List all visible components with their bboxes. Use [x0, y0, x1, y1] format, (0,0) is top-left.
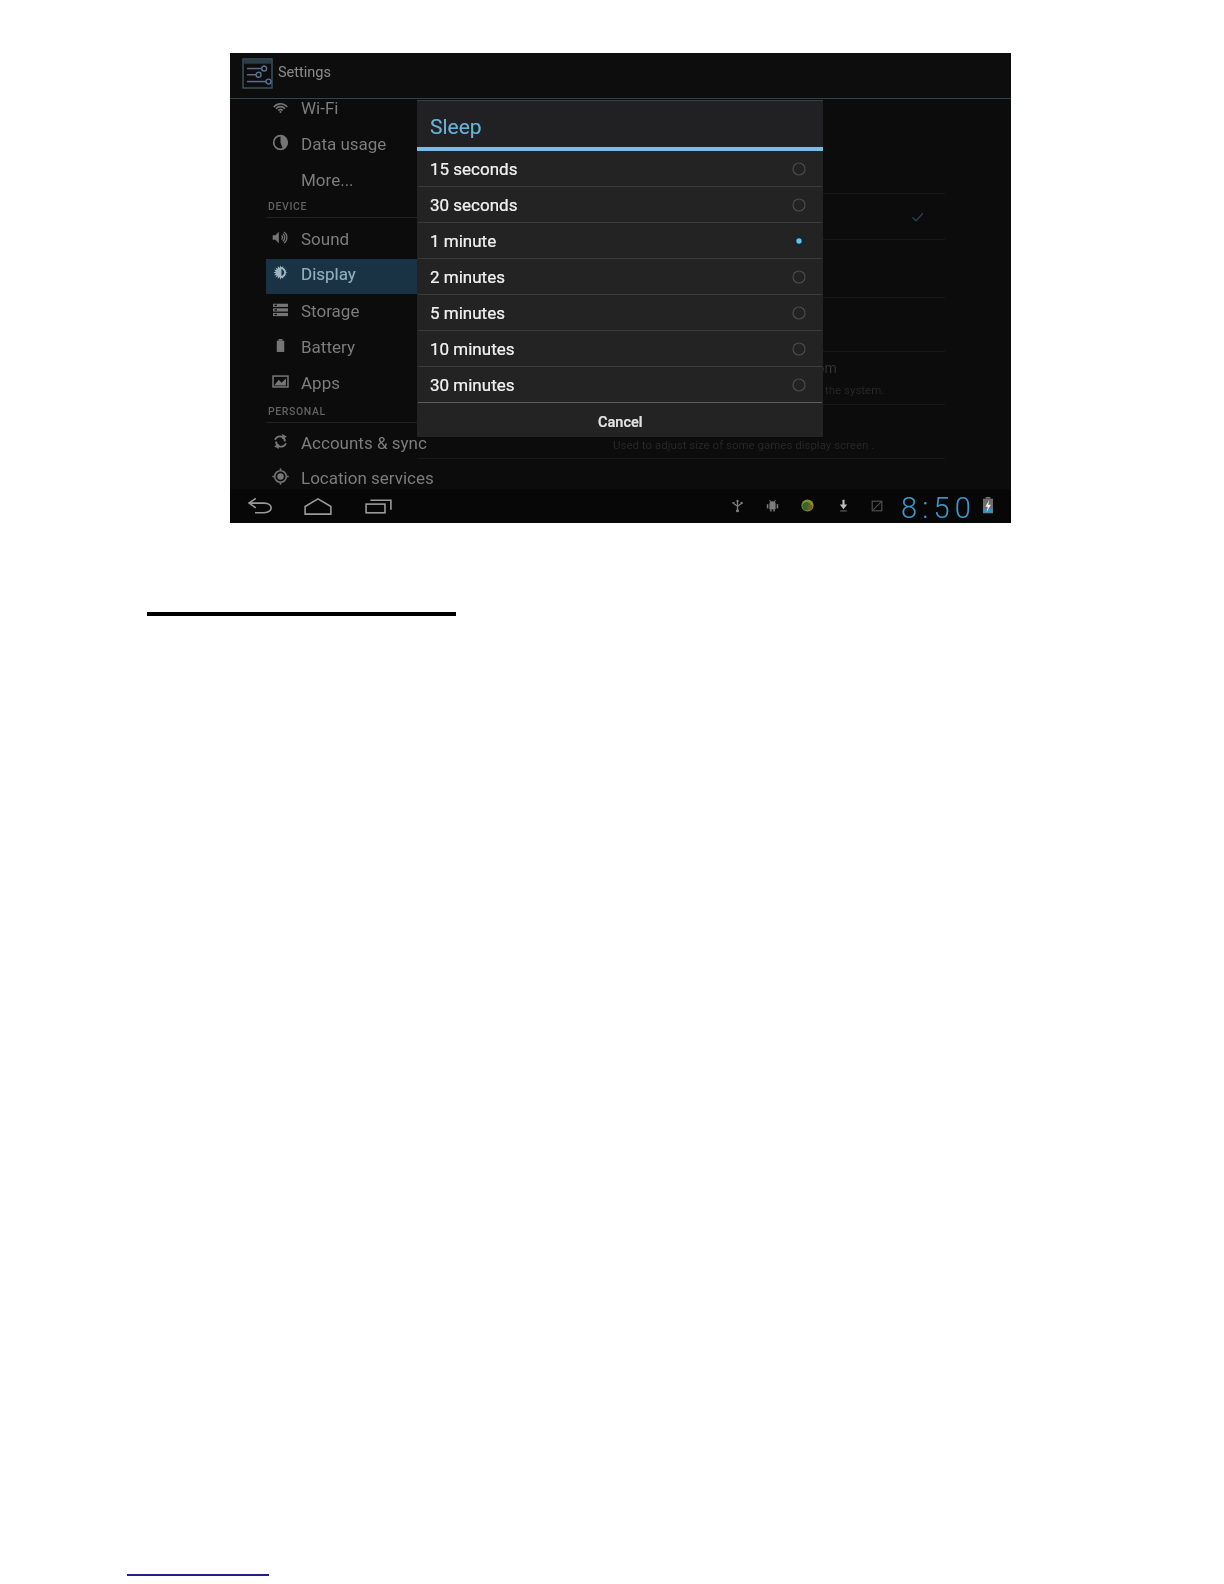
button[interactable]: Display: [266, 255, 466, 289]
button[interactable]: Location services: [266, 459, 466, 493]
button[interactable]: Wi-Fi: [266, 89, 466, 123]
staticText: Settings: [278, 64, 331, 81]
staticText: 2 minutes: [430, 267, 505, 287]
staticText: 10 minutes: [430, 339, 515, 359]
button[interactable]: Storage: [266, 292, 466, 326]
button[interactable]: 30 seconds: [417, 187, 823, 223]
staticText: Accounts & sync: [301, 433, 427, 453]
button[interactable]: 2 minutes: [417, 259, 823, 295]
staticText: 30 minutes: [430, 375, 515, 395]
button[interactable]: [266, 259, 418, 294]
button[interactable]: Cancel: [417, 403, 823, 437]
staticText: Storage: [301, 301, 360, 321]
staticText: Display: [301, 264, 356, 284]
staticText: Apps: [301, 373, 340, 393]
button[interactable]: Recent apps: [360, 491, 396, 521]
button[interactable]: 10 minutes: [417, 331, 823, 367]
button[interactable]: More...: [266, 161, 466, 195]
staticText: Used to adjust the display size of the s…: [654, 383, 885, 396]
button[interactable]: Settings: [278, 59, 338, 87]
button[interactable]: 15 seconds: [417, 151, 823, 187]
button[interactable]: 1 minute: [417, 223, 823, 259]
staticText: Sleep: [430, 115, 482, 140]
staticText: Cancel: [598, 414, 643, 431]
staticText: Location services: [301, 468, 434, 488]
button[interactable]: Battery: [266, 328, 466, 362]
button[interactable]: Home: [300, 491, 336, 521]
button[interactable]: Settings app icon: [242, 58, 273, 89]
staticText: 5 minutes: [430, 303, 505, 323]
button[interactable]: Back: [243, 491, 279, 521]
staticText: 8:50: [901, 491, 977, 523]
staticText: Data usage: [301, 134, 387, 154]
staticText: Battery: [301, 337, 355, 357]
staticText: Display zoom: [753, 360, 837, 376]
staticText: DEVICE: [268, 200, 307, 212]
staticText: 15 seconds: [430, 159, 518, 179]
button[interactable]: Apps: [266, 364, 466, 398]
button[interactable]: 30 minutes: [417, 367, 823, 403]
staticText: 30 seconds: [430, 195, 518, 215]
button[interactable]: Data usage: [266, 125, 466, 159]
staticText: Used to adjust size of some games displa…: [613, 438, 875, 451]
staticText: More...: [301, 170, 354, 190]
button[interactable]: Sound: [266, 220, 466, 254]
button[interactable]: 5 minutes: [417, 295, 823, 331]
staticText: Sound: [301, 229, 350, 249]
staticText: 1 minute: [430, 231, 497, 251]
staticText: Wi-Fi: [301, 98, 339, 118]
button[interactable]: Accounts & sync: [266, 424, 466, 458]
staticText: PERSONAL: [268, 405, 326, 417]
